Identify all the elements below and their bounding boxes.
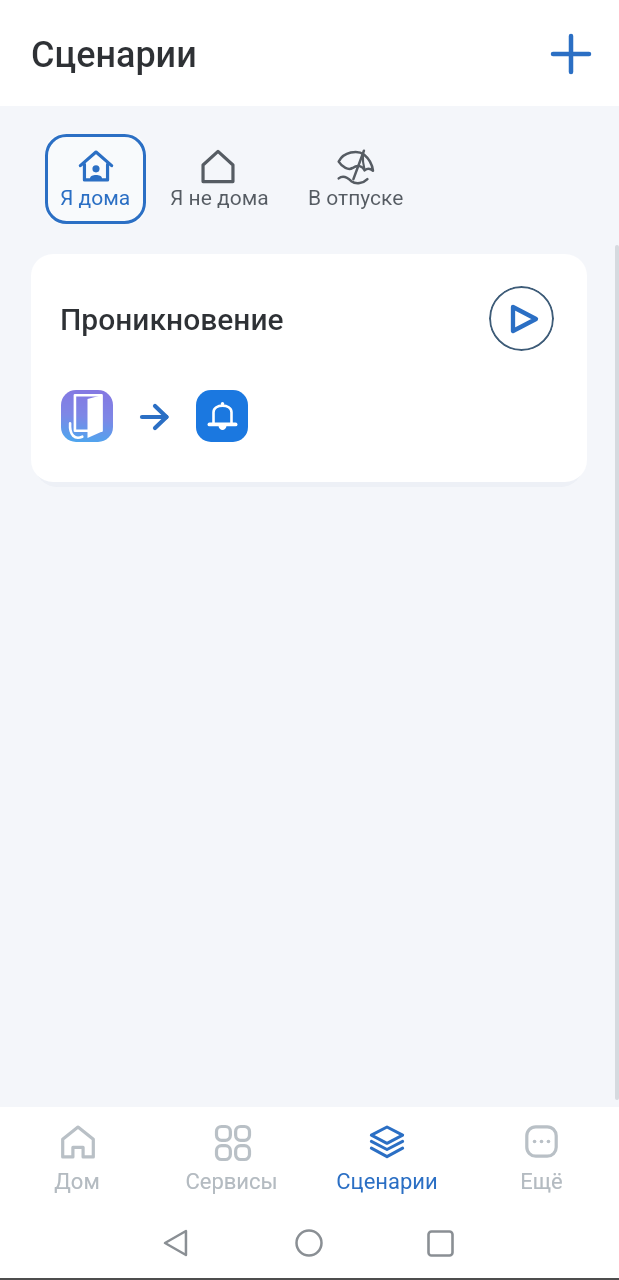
staticText: Я не дома: [170, 186, 269, 211]
staticText: Сервисы: [185, 1169, 278, 1195]
button[interactable]: Home: [287, 1221, 331, 1265]
button[interactable]: Recents: [418, 1221, 462, 1265]
button[interactable]: Back: [155, 1221, 199, 1265]
staticText: Сценарии: [31, 34, 197, 76]
staticText: Сценарии: [336, 1169, 438, 1195]
button[interactable]: Ещё: [464, 1107, 619, 1207]
button[interactable]: Проникновение: [31, 254, 587, 482]
staticText: В отпуске: [308, 186, 404, 211]
staticText: Ещё: [520, 1169, 563, 1195]
button[interactable]: Я дома: [45, 134, 146, 224]
staticText: Проникновение: [60, 302, 284, 337]
button[interactable]: Я не дома: [165, 134, 273, 224]
button[interactable]: Add scenario: [543, 26, 599, 82]
button[interactable]: Сценарии: [309, 1107, 464, 1207]
button[interactable]: Сервисы: [154, 1107, 309, 1207]
staticText: Дом: [54, 1169, 100, 1195]
staticText: Я дома: [60, 186, 131, 211]
button[interactable]: Run scenario: [489, 286, 554, 351]
button[interactable]: В отпуске: [305, 134, 407, 224]
button[interactable]: Дом: [0, 1107, 154, 1207]
